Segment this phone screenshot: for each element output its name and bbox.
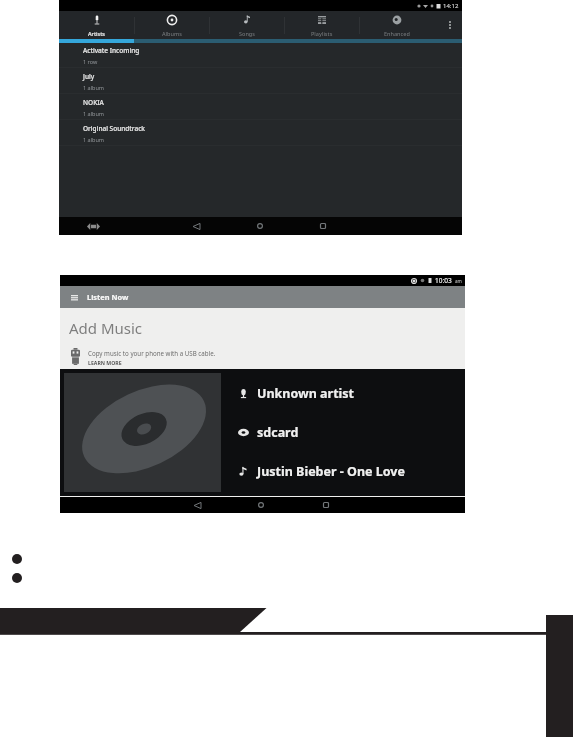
staticText: 1 album	[83, 136, 105, 143]
button[interactable]: Keyboard	[83, 219, 103, 233]
staticText: Artists	[88, 30, 105, 37]
button[interactable]: Unknown artist	[221, 374, 465, 413]
staticText: Justin Bieber - One Love	[257, 463, 405, 480]
button[interactable]: Recent apps	[317, 497, 335, 513]
button[interactable]: More options	[437, 11, 462, 39]
staticText: Unknown artist	[257, 385, 355, 402]
button[interactable]: Navigation menu	[69, 292, 80, 303]
staticText: Copy music to your phone with a USB cabl…	[88, 349, 216, 357]
button[interactable]: Artists	[59, 11, 134, 39]
staticText: Listen Now	[87, 292, 129, 302]
button[interactable]: Home	[252, 497, 270, 513]
staticText: Albums	[162, 30, 182, 37]
staticText: am	[455, 278, 462, 284]
button[interactable]: sdcard	[221, 413, 465, 452]
button[interactable]: July	[59, 68, 462, 94]
button[interactable]: Back	[187, 217, 205, 235]
button[interactable]: Activate Incoming	[59, 42, 462, 68]
staticText: 1 album	[83, 84, 105, 91]
button[interactable]: NOKIA	[59, 94, 462, 120]
staticText: Add Music	[69, 318, 143, 338]
staticText: 14:12	[443, 2, 459, 10]
button[interactable]: Copy music to your phone with a USB cabl…	[60, 344, 465, 369]
button[interactable]: Albums	[134, 11, 209, 39]
button[interactable]: Navigation menu	[60, 286, 465, 308]
staticText: Songs	[239, 30, 255, 37]
button[interactable]: Back	[188, 497, 206, 513]
staticText: LEARN MORE	[88, 359, 122, 366]
staticText: Playlists	[311, 30, 333, 37]
staticText: Activate Incoming	[83, 46, 140, 55]
button[interactable]: Home	[251, 217, 269, 235]
staticText: 1 row	[83, 58, 98, 65]
button[interactable]: Original Soundtrack	[59, 120, 462, 146]
staticText: 10:03	[435, 276, 452, 285]
button[interactable]: Recent apps	[314, 217, 332, 235]
staticText: Original Soundtrack	[83, 124, 146, 133]
staticText: July	[83, 72, 95, 81]
staticText: Enhanced	[384, 30, 410, 37]
button[interactable]: Enhanced	[359, 11, 434, 39]
staticText: sdcard	[257, 424, 299, 441]
button[interactable]: Playlists	[284, 11, 359, 39]
staticText: 1 album	[83, 110, 105, 117]
button[interactable]: Justin Bieber - One Love	[221, 452, 465, 491]
button[interactable]: Songs	[209, 11, 284, 39]
staticText: NOKIA	[83, 98, 104, 107]
